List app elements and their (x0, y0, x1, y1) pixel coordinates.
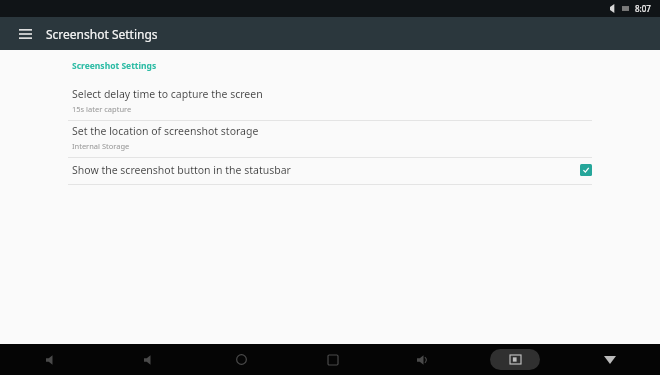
button[interactable]: Set the location of screenshot storage (0, 121, 660, 157)
staticText: Screenshot Settings (46, 26, 158, 42)
staticText: Internal Storage (72, 141, 130, 151)
button[interactable]: Recent apps (287, 344, 378, 375)
button[interactable]: Take screenshot (490, 349, 540, 370)
button[interactable]: Volume up (378, 344, 469, 375)
staticText: Select delay time to capture the screen (72, 87, 263, 101)
staticText: 8:07 (635, 3, 651, 14)
staticText: 15s later capture (72, 104, 132, 114)
staticText: Show the screenshot button in the status… (72, 163, 580, 177)
button[interactable]: Select delay time to capture the screen (0, 84, 660, 120)
button[interactable]: Volume down (105, 344, 196, 375)
staticText: Screenshot Settings (72, 60, 157, 72)
button[interactable]: Show the screenshot button in the status… (0, 158, 660, 184)
button[interactable]: Hide navigation bar (560, 344, 660, 375)
button[interactable]: Home (196, 344, 287, 375)
staticText: Set the location of screenshot storage (72, 124, 259, 138)
button[interactable]: Volume down (0, 344, 105, 375)
button[interactable]: Open navigation menu (12, 21, 38, 47)
